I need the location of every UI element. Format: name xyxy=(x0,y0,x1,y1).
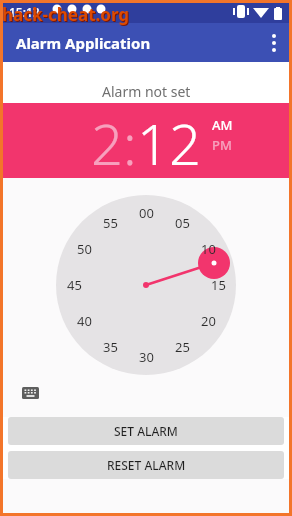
staticText: 15:13 xyxy=(9,4,40,20)
staticText: 45 xyxy=(67,276,82,294)
staticText: hack-cheat.org xyxy=(2,3,130,26)
button[interactable] xyxy=(20,385,41,401)
staticText: 55 xyxy=(103,214,118,232)
staticText: 35 xyxy=(103,338,118,356)
button[interactable]: SET ALARM xyxy=(8,417,284,445)
staticText: 30 xyxy=(139,348,154,366)
staticText: 00 xyxy=(139,204,154,222)
staticText: 05 xyxy=(175,214,190,232)
staticText: 15 xyxy=(211,276,226,294)
staticText: 50 xyxy=(77,240,92,258)
staticText: RESET ALARM xyxy=(107,457,186,473)
staticText: Alarm Application xyxy=(16,33,151,53)
staticText: 40 xyxy=(77,312,92,330)
staticText: hack-cheat.org xyxy=(3,4,131,27)
staticText: Alarm not set xyxy=(102,82,191,101)
staticText: 25 xyxy=(175,338,190,356)
staticText: 2: xyxy=(91,105,137,180)
staticText: 20 xyxy=(201,312,216,330)
button[interactable]: RESET ALARM xyxy=(8,451,284,479)
staticText: PM xyxy=(212,136,232,154)
staticText: SET ALARM xyxy=(114,423,178,439)
staticText: 10 xyxy=(201,240,216,258)
button[interactable] xyxy=(256,23,292,62)
staticText: AM xyxy=(212,116,233,134)
staticText: 12 xyxy=(137,105,201,180)
